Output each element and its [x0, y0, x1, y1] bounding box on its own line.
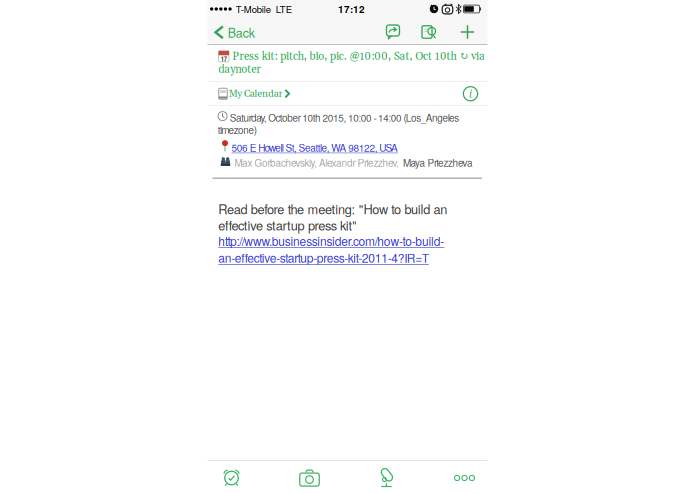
button[interactable]: More — [440, 461, 488, 494]
staticText: i — [469, 87, 472, 101]
staticText: timezone) — [218, 122, 257, 137]
button[interactable]: http://www.businessinsider.com/how-to-bu… — [218, 232, 444, 266]
button[interactable]: Camera — [285, 461, 333, 494]
staticText: Maya Priezzheva — [403, 155, 473, 170]
staticText: daynoter — [218, 63, 261, 77]
button[interactable]: Add — [461, 25, 474, 39]
staticText: http://www.businessinsider.com/how-to-bu… — [218, 232, 444, 249]
button[interactable]: Forward — [386, 24, 400, 39]
staticText: 506 E Howell St, Seattle, WA 98122, USA — [231, 140, 398, 154]
button[interactable]: 506 E Howell St, Seattle, WA 98122, USA — [207, 140, 398, 154]
staticText: an-effective-startup-press-kit-2011-4?IR… — [218, 249, 429, 266]
button[interactable]: Microphone — [362, 461, 410, 494]
staticText: T-Mobile — [236, 2, 271, 16]
button[interactable]: My Calendar — [218, 87, 290, 100]
staticText: Read before the meeting: "How to build a… — [218, 200, 447, 218]
staticText: effective startup press kit" — [218, 216, 357, 234]
button[interactable]: Event details — [463, 86, 478, 101]
button[interactable]: Alarms — [207, 461, 255, 494]
staticText: Back — [228, 23, 255, 41]
staticText: 17 — [221, 55, 227, 63]
staticText: Saturday, October 10th 2015, 10:00 - 14:… — [230, 110, 459, 124]
button[interactable]: Back — [214, 23, 255, 41]
staticText: Press kit: pitch, bio, pic. @10:00, Sat,… — [232, 50, 485, 64]
staticText: Max Gorbachevskiy, Alexandr Priezzhev, — [234, 155, 399, 170]
button[interactable]: Search document — [422, 25, 436, 39]
staticText: LTE — [276, 2, 292, 16]
staticText: 17:12 — [338, 2, 365, 16]
staticText: My Calendar — [228, 87, 282, 100]
